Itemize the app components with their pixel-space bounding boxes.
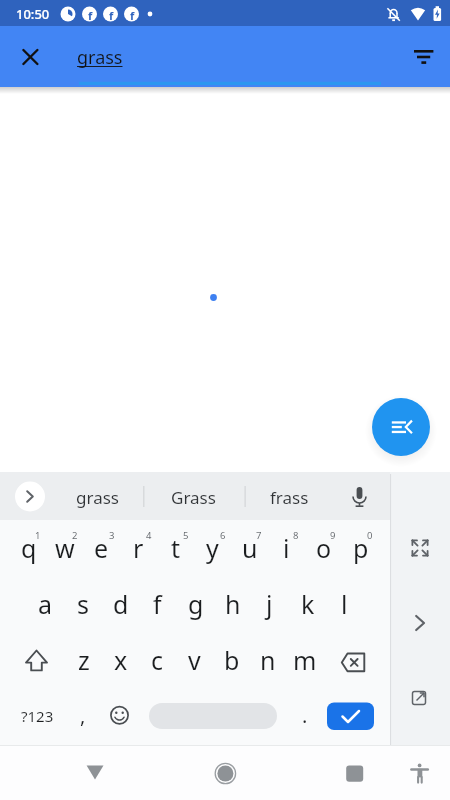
staticText: q [21, 531, 37, 565]
button[interactable]: j [251, 576, 288, 632]
button[interactable] [14, 41, 46, 73]
button[interactable] [408, 41, 440, 73]
button[interactable] [149, 703, 277, 729]
staticText: 9 [330, 529, 336, 542]
button[interactable]: frass [229, 482, 349, 512]
staticText: 2 [72, 529, 78, 542]
button[interactable]: m [286, 632, 323, 688]
staticText: frass [270, 486, 309, 509]
staticText: 8 [293, 529, 299, 542]
staticText: 10:50 [16, 5, 50, 23]
button[interactable]: b [213, 632, 250, 688]
button[interactable]: o [305, 520, 342, 576]
button[interactable]: e [83, 520, 120, 576]
button[interactable]: Grass [133, 482, 253, 512]
button[interactable] [398, 601, 442, 645]
button[interactable]: . [290, 700, 320, 730]
staticText: u [242, 531, 258, 565]
button[interactable]: l [326, 576, 363, 632]
button[interactable]: u [231, 520, 268, 576]
button[interactable] [398, 526, 442, 570]
staticText: y [206, 531, 219, 565]
staticText: Grass [171, 486, 216, 509]
staticText: j [266, 587, 273, 621]
staticText: ?123 [21, 706, 54, 726]
button[interactable]: y [194, 520, 231, 576]
staticText: grass [76, 486, 119, 509]
staticText: i [283, 531, 290, 565]
staticText: m [293, 643, 317, 677]
staticText: a [38, 587, 53, 621]
button[interactable]: grass [37, 482, 157, 512]
button[interactable]: t [157, 520, 194, 576]
staticText: z [78, 643, 90, 677]
staticText: p [353, 531, 369, 565]
staticText: b [224, 643, 240, 677]
staticText: grass [77, 45, 123, 70]
button[interactable] [15, 481, 46, 512]
staticText: 5 [183, 529, 189, 542]
staticText: k [301, 587, 315, 621]
staticText: w [55, 531, 75, 565]
button[interactable] [205, 752, 245, 792]
button[interactable]: f [139, 576, 176, 632]
staticText: 3 [109, 529, 115, 542]
button[interactable]: a [27, 576, 64, 632]
button[interactable]: w [46, 520, 83, 576]
staticText: 1 [35, 529, 41, 542]
button[interactable]: r [120, 520, 157, 576]
button[interactable] [342, 632, 386, 688]
button[interactable]: n [249, 632, 286, 688]
staticText: 6 [220, 529, 226, 542]
staticText: s [77, 587, 89, 621]
button[interactable]: ?123 [7, 701, 67, 731]
staticText: t [171, 531, 181, 565]
staticText: 0 [367, 529, 373, 542]
button[interactable] [340, 477, 380, 517]
button[interactable]: q [10, 520, 47, 576]
button[interactable] [333, 752, 373, 792]
button[interactable] [101, 688, 141, 744]
staticText: l [341, 587, 348, 621]
staticText: 7 [256, 529, 262, 542]
staticText: , [80, 702, 86, 729]
button[interactable]: g [177, 576, 214, 632]
staticText: f [130, 8, 135, 23]
button[interactable] [327, 702, 374, 730]
staticText: o [316, 531, 332, 565]
button[interactable] [13, 632, 53, 688]
button[interactable]: c [139, 632, 176, 688]
button[interactable]: d [102, 576, 139, 632]
staticText: n [260, 643, 276, 677]
staticText: c [151, 643, 164, 677]
button[interactable]: h [214, 576, 251, 632]
staticText: f [88, 8, 93, 23]
button[interactable]: i [268, 520, 305, 576]
staticText: v [188, 643, 201, 677]
staticText: . [302, 702, 308, 729]
staticText: h [225, 587, 241, 621]
staticText: 4 [146, 529, 152, 542]
button[interactable]: , [68, 700, 98, 730]
staticText: f [153, 587, 162, 621]
button[interactable]: x [102, 632, 139, 688]
staticText: e [94, 531, 109, 565]
staticText: f [109, 8, 114, 23]
staticText: r [133, 531, 144, 565]
button[interactable]: z [65, 632, 102, 688]
button[interactable]: k [289, 576, 326, 632]
button[interactable] [75, 752, 115, 792]
button[interactable]: p [342, 520, 379, 576]
button[interactable]: s [64, 576, 101, 632]
button[interactable] [372, 398, 430, 456]
staticText: g [188, 587, 204, 621]
staticText: d [113, 587, 129, 621]
button[interactable]: v [176, 632, 213, 688]
staticText: x [114, 643, 128, 677]
button[interactable] [398, 676, 442, 720]
button[interactable] [399, 752, 439, 792]
